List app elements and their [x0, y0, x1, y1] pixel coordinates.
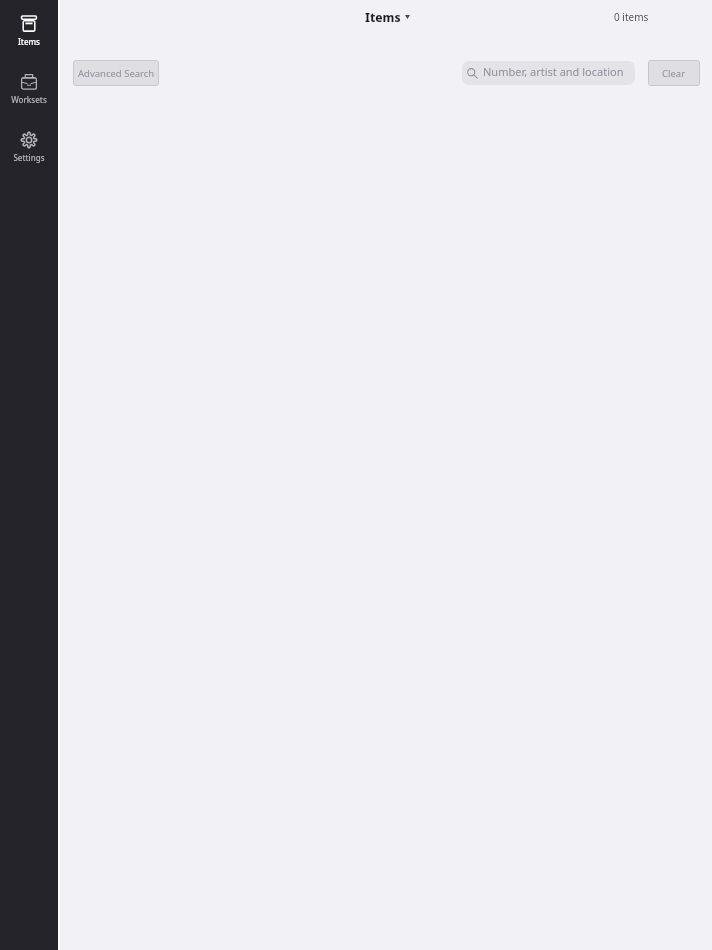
staticText: Items — [365, 9, 401, 25]
staticText: Items — [18, 36, 40, 47]
staticText: 0 items — [614, 10, 649, 24]
staticText: Advanced Search — [78, 67, 155, 80]
staticText: Number, artist and location — [483, 64, 624, 79]
staticText: Settings — [13, 152, 45, 163]
button[interactable]: Advanced Search — [73, 60, 159, 86]
button[interactable]: Worksets — [0, 66, 58, 111]
button[interactable]: Clear — [648, 60, 700, 86]
button[interactable]: Items — [361, 7, 414, 27]
other: Search — [467, 68, 478, 79]
button[interactable]: Settings — [0, 124, 58, 169]
button[interactable]: Search — [462, 61, 635, 85]
staticText: Clear — [662, 67, 686, 80]
staticText: Worksets — [11, 94, 47, 105]
button[interactable]: Items — [0, 8, 58, 53]
